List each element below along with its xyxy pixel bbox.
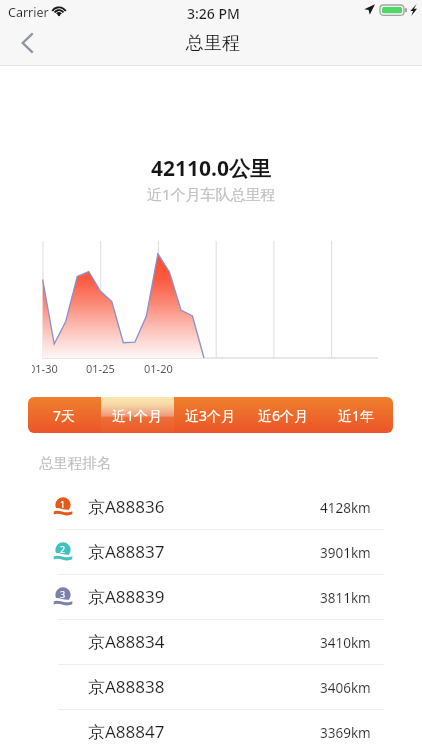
- staticText: 京A88834: [88, 630, 165, 653]
- button[interactable]: 京A88847: [0, 710, 422, 750]
- staticText: 01-25: [86, 361, 115, 376]
- button[interactable]: 近3个月: [174, 397, 247, 433]
- staticText: 3406km: [320, 679, 371, 697]
- button[interactable]: 1: [0, 485, 422, 530]
- staticText: 01-20: [144, 361, 173, 376]
- staticText: 近1年: [338, 406, 375, 425]
- staticText: 2: [60, 543, 66, 555]
- staticText: 1: [60, 498, 66, 510]
- staticText: 3:26 PM: [187, 4, 240, 23]
- button[interactable]: 2: [0, 530, 422, 575]
- staticText: 3369km: [320, 724, 371, 742]
- staticText: 京A88837: [88, 540, 165, 563]
- staticText: 京A88838: [88, 675, 165, 698]
- staticText: 近6个月: [258, 406, 309, 425]
- button[interactable]: 京A88834: [0, 620, 422, 665]
- staticText: 7天: [53, 406, 76, 425]
- button[interactable]: 近1个月: [101, 397, 174, 433]
- staticText: 总里程排名: [39, 454, 112, 472]
- staticText: 京A88836: [88, 495, 165, 518]
- staticText: 近3个月: [185, 406, 236, 425]
- button[interactable]: Back: [5, 21, 49, 65]
- button[interactable]: 近1年: [320, 397, 393, 433]
- button[interactable]: 京A88838: [0, 665, 422, 710]
- button[interactable]: 7天: [28, 397, 101, 433]
- staticText: 总里程: [186, 32, 240, 55]
- staticText: 3811km: [320, 589, 371, 607]
- staticText: 3901km: [320, 544, 371, 562]
- staticText: 3410km: [320, 634, 371, 652]
- button[interactable]: 3: [0, 575, 422, 620]
- staticText: 4128km: [320, 499, 371, 517]
- staticText: 42110.0公里: [151, 154, 271, 183]
- staticText: 京A88847: [88, 720, 165, 743]
- staticText: 3: [60, 588, 66, 600]
- button[interactable]: 近6个月: [247, 397, 320, 433]
- staticText: 近1个月车队总里程: [147, 184, 276, 204]
- staticText: 近1个月: [112, 406, 163, 425]
- staticText: 01-30: [32, 361, 58, 375]
- staticText: 京A88839: [88, 585, 165, 608]
- staticText: Carrier: [8, 4, 49, 21]
